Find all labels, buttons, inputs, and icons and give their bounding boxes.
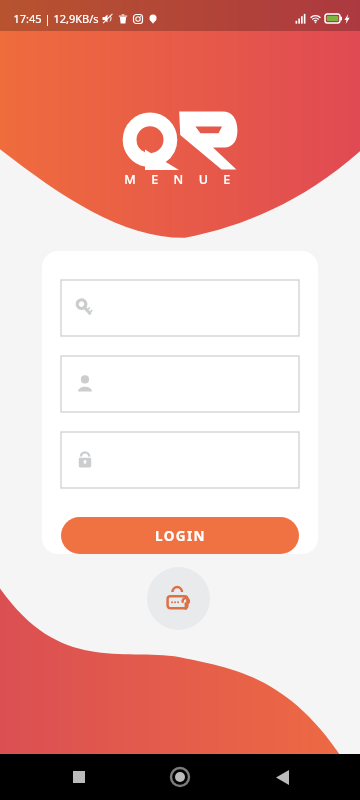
button[interactable]: Back xyxy=(259,754,305,800)
staticText: 17:45 | 12,9KB/s xyxy=(13,11,99,26)
button[interactable]: Recents xyxy=(56,754,102,800)
staticText: LOGIN xyxy=(155,527,206,545)
button[interactable]: Home xyxy=(157,754,203,800)
button[interactable]: Account xyxy=(61,356,299,412)
button[interactable]: Username xyxy=(61,280,299,336)
staticText: MENUE xyxy=(124,171,246,188)
button[interactable]: LOGIN xyxy=(61,517,299,554)
button[interactable]: Forgot password xyxy=(147,567,210,630)
button[interactable]: Password xyxy=(61,432,299,488)
